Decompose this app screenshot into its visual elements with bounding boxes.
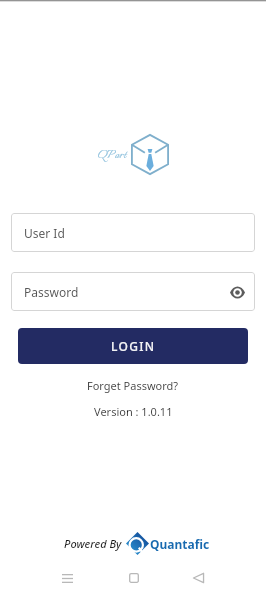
button[interactable]: Recents xyxy=(52,563,82,592)
staticText: Password xyxy=(24,284,79,300)
button[interactable]: User Id xyxy=(11,213,255,252)
staticText: QPort xyxy=(98,146,127,165)
staticText: Powered By xyxy=(64,536,122,551)
button[interactable]: LOGIN xyxy=(18,328,248,364)
staticText: Version : 1.0.11 xyxy=(94,404,173,419)
button[interactable]: Forget Password? xyxy=(85,376,181,395)
button[interactable]: Home xyxy=(119,563,149,592)
staticText: Quantafic xyxy=(150,536,210,552)
button[interactable]: Show password xyxy=(225,280,249,304)
staticText: LOGIN xyxy=(111,338,156,354)
button[interactable]: Back xyxy=(183,563,213,592)
button[interactable]: Password xyxy=(11,272,255,311)
staticText: User Id xyxy=(24,225,65,241)
